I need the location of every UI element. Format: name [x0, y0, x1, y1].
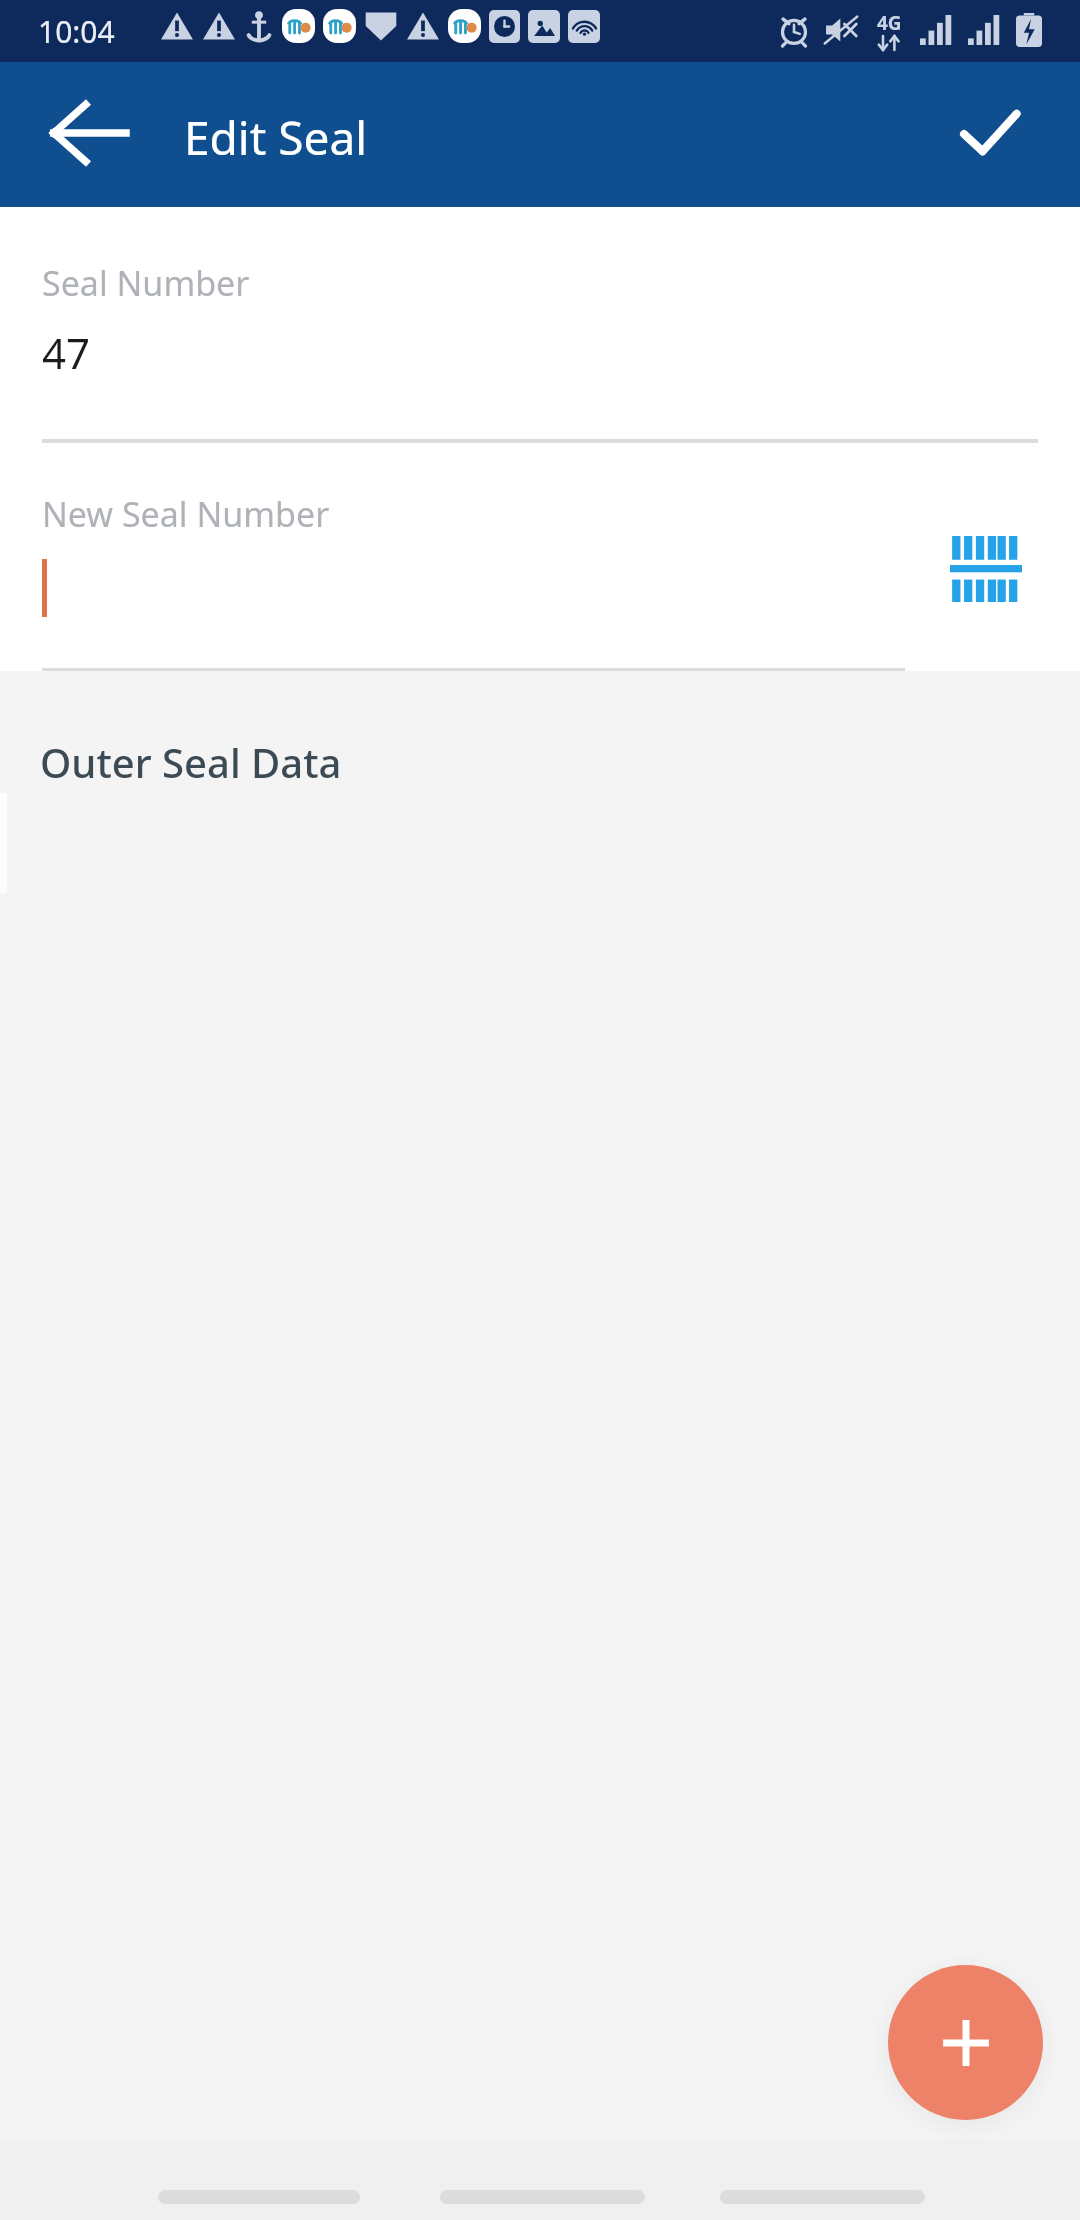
- staticText: Seal Number: [42, 260, 250, 306]
- staticText: New Seal Number: [42, 491, 330, 537]
- button[interactable]: Save: [924, 67, 1056, 199]
- staticText: 4G: [877, 10, 902, 36]
- button[interactable]: Scan barcode: [924, 507, 1048, 631]
- staticText: 10:04: [38, 11, 115, 52]
- button[interactable]: Back: [22, 67, 154, 199]
- staticText: Edit Seal: [184, 106, 368, 169]
- button[interactable]: Add: [888, 1965, 1043, 2120]
- staticText: 47: [42, 324, 91, 381]
- staticText: Outer Seal Data: [40, 735, 342, 789]
